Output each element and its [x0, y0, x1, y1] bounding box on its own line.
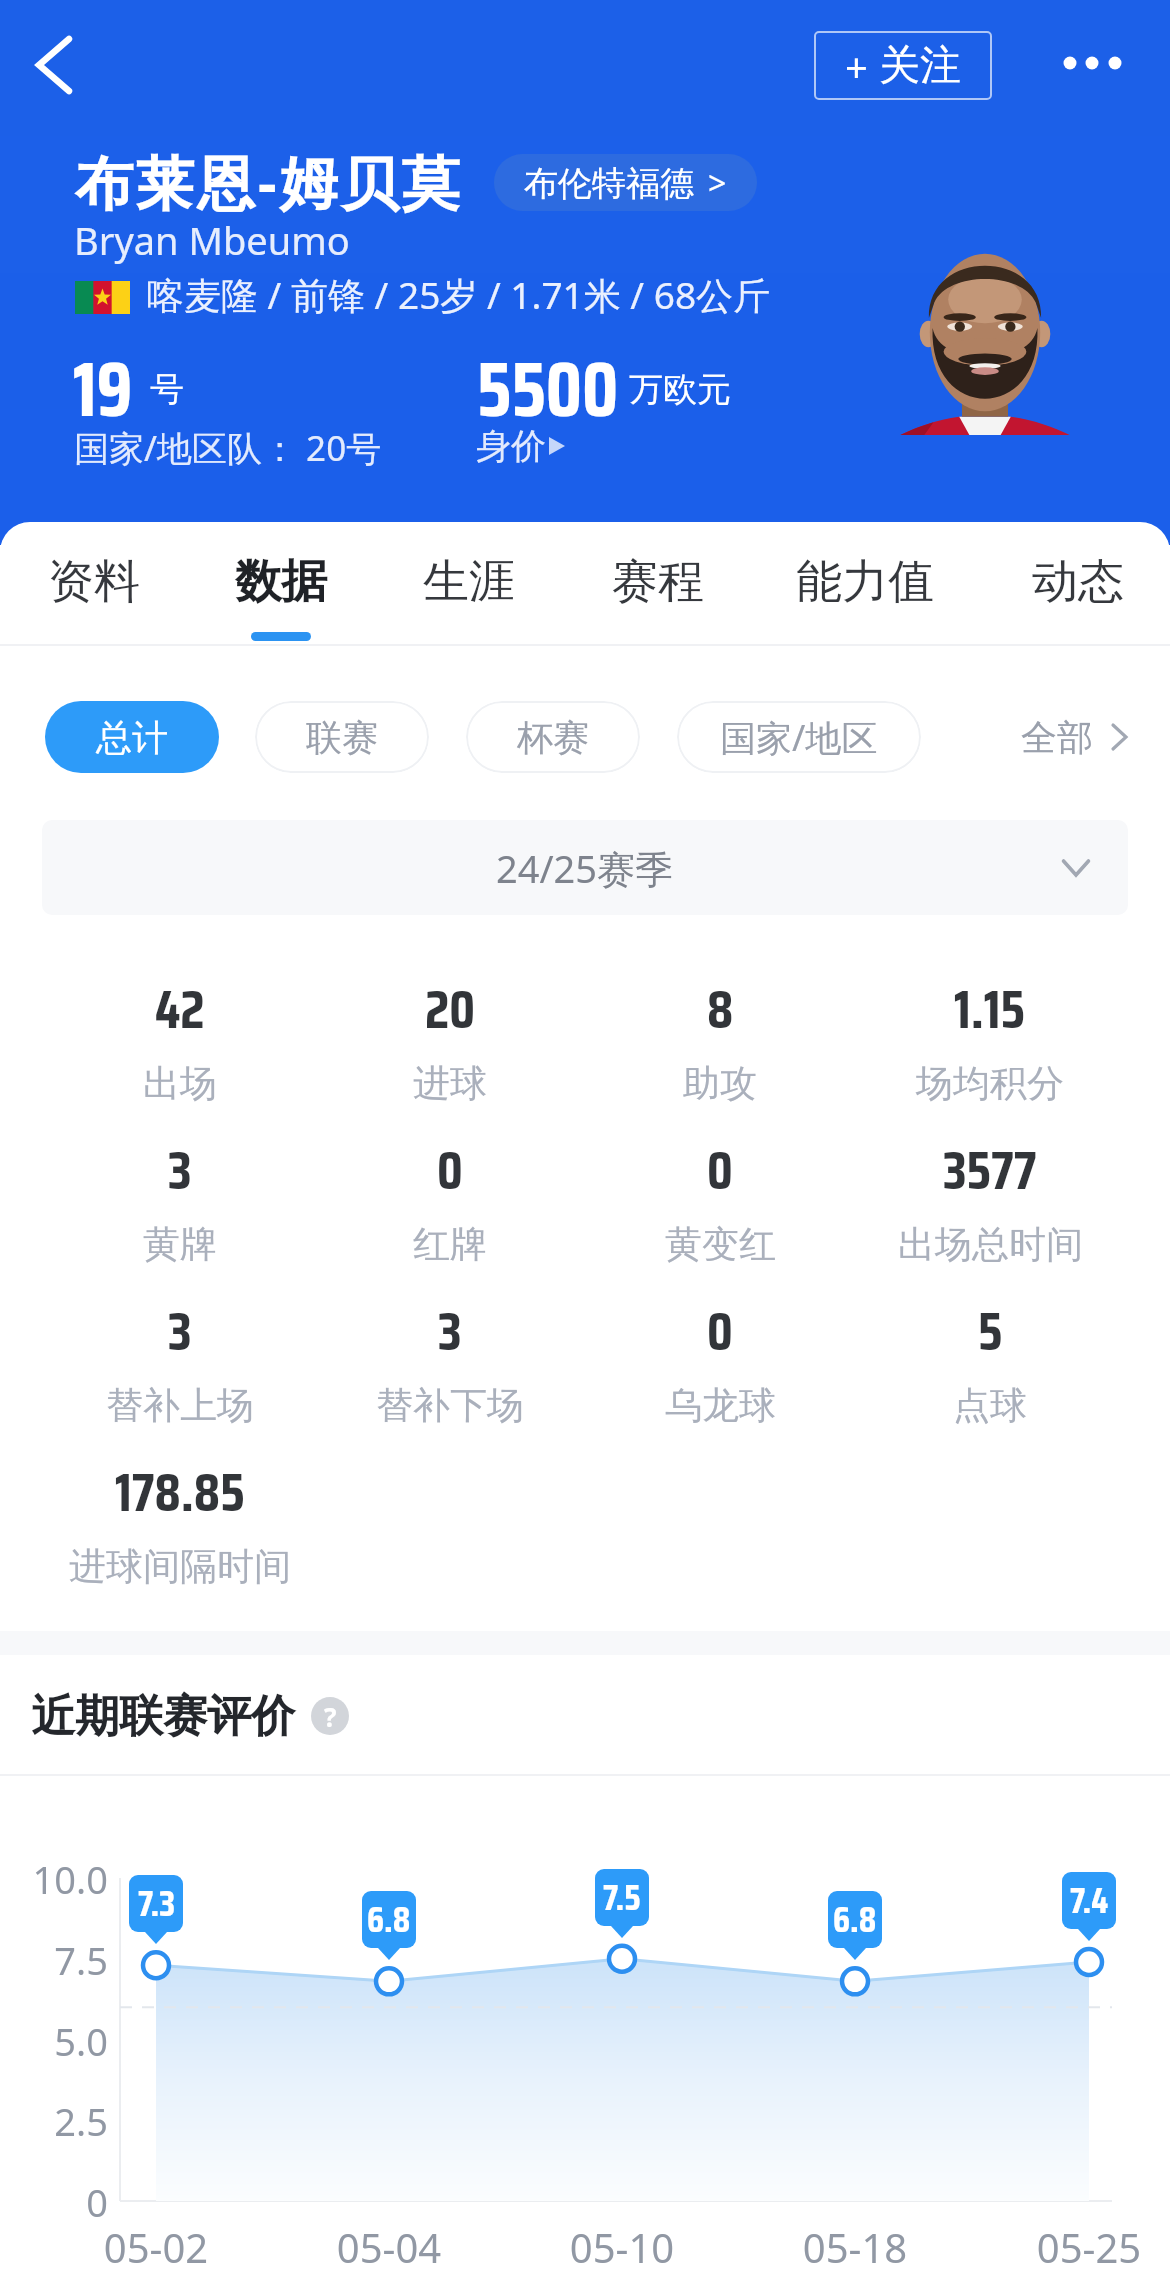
staticText: 万欧元 — [629, 368, 731, 411]
staticText: 3 — [438, 1289, 462, 1374]
staticText: 6.8 — [367, 1891, 411, 1948]
button[interactable]: 全部 — [1021, 701, 1129, 773]
staticText: 6.8 — [833, 1891, 877, 1948]
staticText: 替补下场 — [376, 1382, 524, 1429]
staticText: 资料 — [48, 553, 140, 611]
button[interactable]: 数据 — [201, 540, 361, 644]
staticText: 杯赛 — [517, 715, 589, 760]
staticText: 2.5 — [0, 2095, 108, 2147]
staticText: 场均积分 — [916, 1060, 1064, 1107]
staticText: 24/25赛季 — [496, 842, 674, 894]
staticText: 点球 — [953, 1382, 1027, 1429]
staticText: 05-18 — [755, 2220, 955, 2270]
button[interactable]: 总计 — [45, 701, 219, 773]
staticText: 黄变红 — [665, 1221, 776, 1268]
staticText: 总计 — [96, 715, 168, 760]
staticText: 3 — [168, 1128, 192, 1213]
staticText: 178.85 — [115, 1450, 245, 1535]
staticText: 赛程 — [612, 553, 704, 611]
staticText: 乌龙球 — [665, 1382, 776, 1429]
button[interactable]: 动态 — [998, 540, 1158, 644]
button[interactable]: Back — [0, 0, 110, 130]
staticText: Bryan Mbeumo — [74, 214, 350, 266]
button[interactable]: 联赛 — [255, 701, 429, 773]
staticText: 0 — [437, 1128, 463, 1213]
button[interactable]: 赛程 — [578, 540, 738, 644]
button[interactable]: 能力值 — [772, 540, 958, 644]
staticText: > — [708, 161, 727, 205]
staticText: 42 — [155, 967, 205, 1052]
staticText: 7.5 — [0, 1934, 108, 1986]
staticText: 0 — [707, 1128, 733, 1213]
staticText: 8 — [707, 967, 734, 1052]
staticText: 1.15 — [954, 967, 1026, 1052]
button[interactable]: 国家/地区 — [677, 701, 921, 773]
staticText: 5.0 — [0, 2015, 108, 2067]
staticText: 7.4 — [1070, 1872, 1109, 1929]
button[interactable]: 身价 — [476, 424, 570, 468]
staticText: 5500 — [477, 330, 619, 450]
staticText: 关注 — [879, 40, 961, 92]
staticText: 3577 — [943, 1128, 1037, 1213]
staticText: 替补上场 — [106, 1382, 254, 1429]
staticText: 出场总时间 — [898, 1221, 1083, 1268]
staticText: 7.3 — [138, 1875, 175, 1932]
staticText: + — [845, 39, 868, 93]
staticText: 生涯 — [423, 553, 515, 611]
button[interactable]: 杯赛 — [466, 701, 640, 773]
button[interactable]: 布伦特福德 — [494, 154, 757, 211]
staticText: 19 — [73, 330, 133, 450]
staticText: 国家/地区队： 20号 — [74, 424, 382, 472]
staticText: 布伦特福德 — [524, 162, 694, 205]
button[interactable]: 生涯 — [389, 540, 549, 644]
staticText: 红牌 — [413, 1221, 487, 1268]
staticText: 喀麦隆 / 前锋 / 25岁 / 1.71米 / 68公斤 — [147, 269, 771, 320]
staticText: 05-04 — [289, 2220, 489, 2270]
staticText: 身价 — [476, 424, 546, 468]
staticText: 0 — [0, 2176, 108, 2228]
button[interactable]: 24/25赛季 — [42, 820, 1128, 915]
staticText: 数据 — [235, 553, 327, 611]
staticText: 能力值 — [796, 553, 934, 611]
staticText: 7.5 — [603, 1869, 641, 1926]
staticText: 10.0 — [0, 1853, 108, 1905]
button[interactable]: More options — [1030, 8, 1155, 118]
staticText: 助攻 — [683, 1060, 757, 1107]
staticText: 3 — [168, 1289, 192, 1374]
staticText: 联赛 — [306, 715, 378, 760]
staticText: 布莱恩-姆贝莫 — [75, 142, 463, 221]
button[interactable]: Help — [311, 1697, 349, 1735]
staticText: 05-02 — [56, 2220, 256, 2270]
staticText: 20 — [425, 967, 476, 1052]
button[interactable]: 资料 — [14, 540, 174, 644]
button[interactable]: + — [814, 31, 992, 100]
staticText: ? — [324, 1699, 337, 1734]
staticText: 动态 — [1032, 553, 1124, 611]
staticText: 国家/地区 — [720, 713, 878, 762]
staticText: 全部 — [1021, 715, 1093, 760]
staticText: 0 — [707, 1289, 733, 1374]
staticText: 号 — [150, 368, 184, 411]
staticText: 近期联赛评价 — [31, 1689, 295, 1744]
staticText: 05-10 — [522, 2220, 722, 2270]
staticText: 进球间隔时间 — [69, 1543, 291, 1590]
staticText: 05-25 — [989, 2220, 1170, 2270]
staticText: 进球 — [413, 1060, 487, 1107]
staticText: 出场 — [143, 1060, 217, 1107]
staticText: 5 — [978, 1289, 1003, 1374]
staticText: 黄牌 — [143, 1221, 217, 1268]
